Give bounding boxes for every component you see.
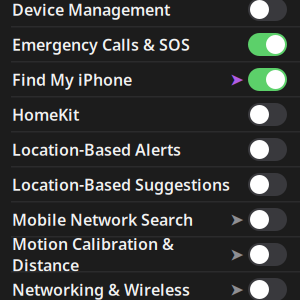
button[interactable]: Device Management xyxy=(0,0,300,27)
staticText: Find My iPhone xyxy=(12,69,132,90)
staticText: ➤ xyxy=(229,245,244,264)
staticText: Location-Based Suggestions xyxy=(12,174,230,195)
button[interactable]: Location-Based Suggestions xyxy=(0,167,300,202)
staticText: ➤ xyxy=(229,210,244,229)
staticText: Device Management xyxy=(12,0,170,20)
button[interactable]: Motion Calibration & Distance xyxy=(0,237,300,272)
staticText: Networking & Wireless xyxy=(12,279,190,300)
button[interactable]: HomeKit xyxy=(0,97,300,132)
staticText: ➤ xyxy=(229,280,244,299)
staticText: ➤ xyxy=(229,70,244,89)
button[interactable]: Location-Based Alerts xyxy=(0,132,300,167)
button[interactable]: Emergency Calls & SOS xyxy=(0,27,300,62)
button[interactable]: Networking & Wireless xyxy=(0,272,300,300)
staticText: HomeKit xyxy=(12,104,79,125)
staticText: Emergency Calls & SOS xyxy=(12,34,190,55)
staticText: Motion Calibration & Distance xyxy=(12,233,174,276)
staticText: Mobile Network Search xyxy=(12,209,193,230)
button[interactable]: Mobile Network Search xyxy=(0,202,300,237)
staticText: Location-Based Alerts xyxy=(12,139,181,160)
button[interactable]: Find My iPhone xyxy=(0,62,300,97)
